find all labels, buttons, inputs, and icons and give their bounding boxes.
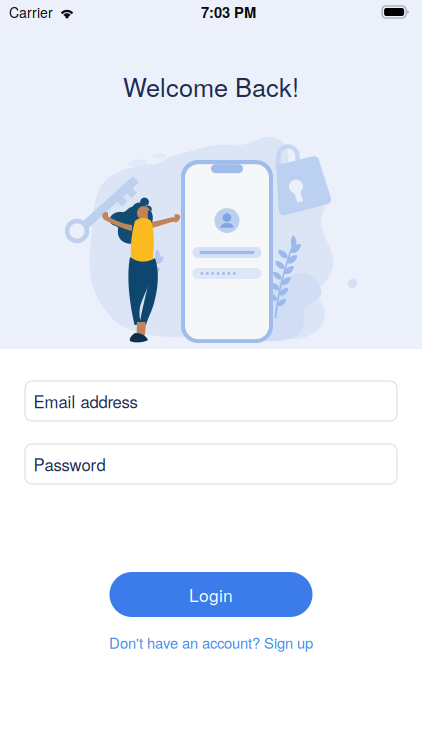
staticText: Password (33, 452, 105, 476)
staticText: Welcome Back! (123, 68, 299, 104)
staticText: Email address (33, 389, 137, 413)
staticText: Don't have an account? Sign up (109, 632, 313, 653)
staticText: Login (189, 582, 233, 607)
button[interactable]: Password (25, 444, 397, 484)
button[interactable]: Login (109, 572, 312, 617)
button[interactable]: Don't have an account? Sign up (109, 626, 313, 659)
staticText: 7:03 PM (201, 1, 256, 22)
staticText: Carrier (9, 2, 53, 22)
button[interactable]: Email address (25, 381, 397, 421)
